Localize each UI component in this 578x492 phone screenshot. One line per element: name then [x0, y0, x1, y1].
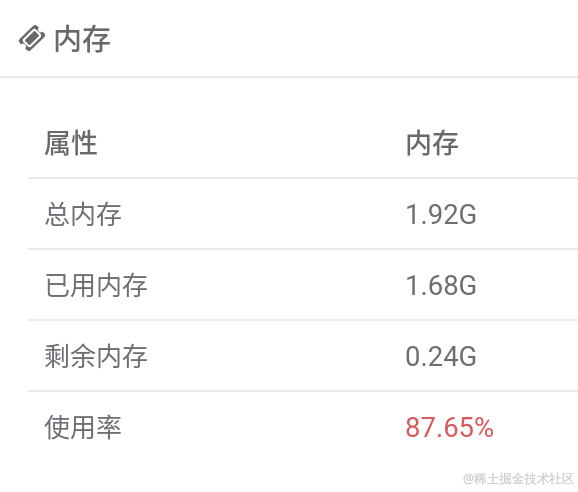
- button[interactable]: 总内存: [0, 179, 578, 248]
- button[interactable]: 内存: [0, 0, 578, 76]
- button[interactable]: 剩余内存: [0, 321, 578, 390]
- staticText: 1.92G: [405, 198, 478, 230]
- staticText: 剩余内存: [44, 336, 149, 374]
- staticText: 属性: [44, 122, 98, 161]
- staticText: 使用率: [44, 407, 123, 445]
- staticText: 已用内存: [44, 265, 149, 303]
- staticText: 1.68G: [405, 269, 478, 301]
- button[interactable]: 属性: [0, 78, 578, 177]
- staticText: @稀土掘金技术社区: [463, 470, 575, 487]
- staticText: 0.24G: [405, 340, 478, 372]
- staticText: 内存: [53, 16, 112, 58]
- other: 内存: [18, 24, 46, 52]
- button[interactable]: 使用率: [0, 392, 578, 461]
- button[interactable]: 已用内存: [0, 250, 578, 319]
- staticText: 87.65%: [405, 411, 495, 443]
- staticText: 总内存: [44, 194, 123, 232]
- staticText: 内存: [405, 122, 459, 161]
